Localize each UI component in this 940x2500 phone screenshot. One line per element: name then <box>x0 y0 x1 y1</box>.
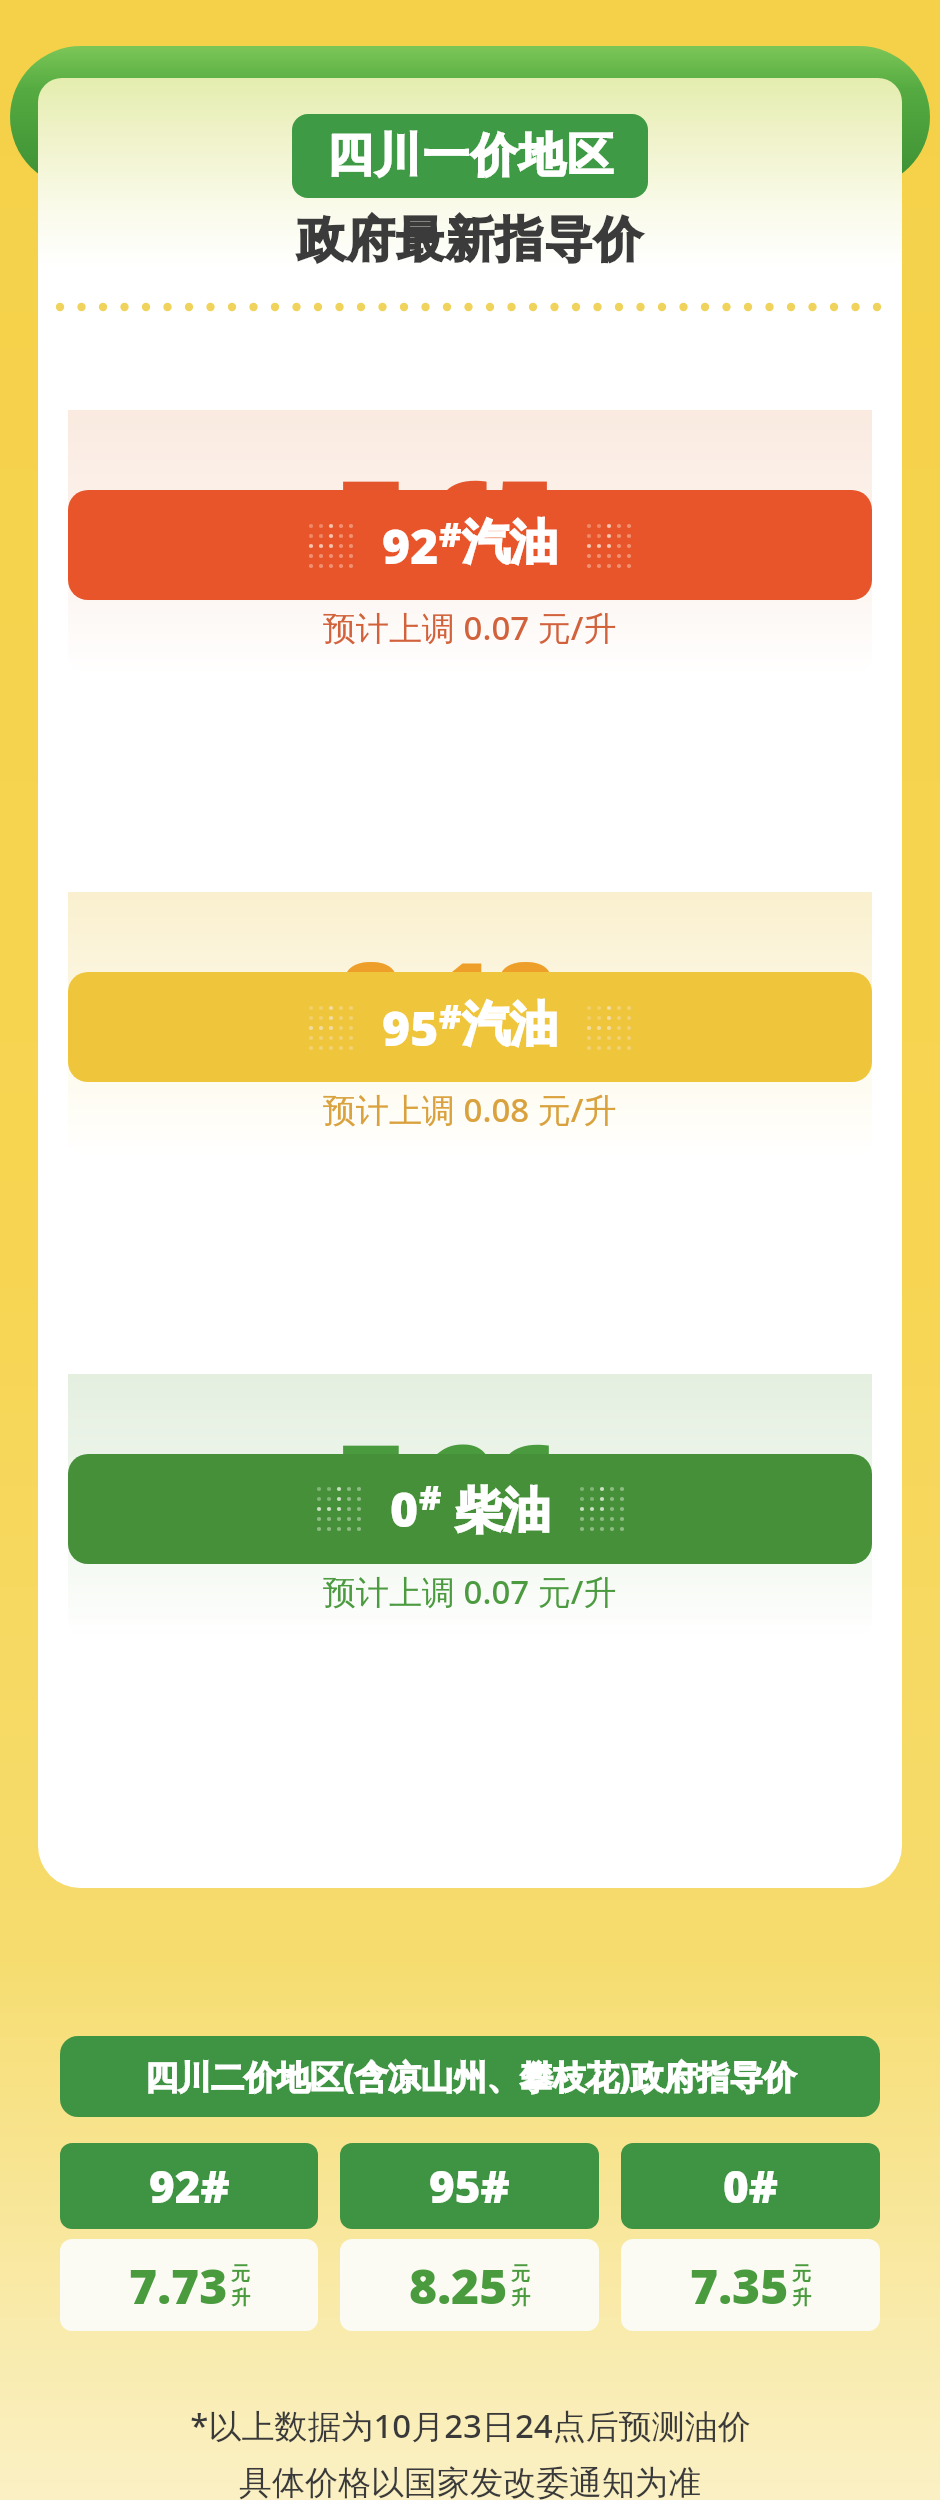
staticText: 四川一价地区 <box>326 127 614 185</box>
staticText: 升 <box>231 2286 250 2310</box>
staticText: 0 <box>390 1476 419 1541</box>
staticText: 7.26 <box>339 1408 557 1555</box>
staticText: 升 <box>511 2286 530 2310</box>
button[interactable]: 8.18 <box>68 838 872 1268</box>
staticText: 8.25 <box>409 2253 508 2318</box>
staticText: 元 <box>511 2262 530 2286</box>
staticText: 四川二价地区(含凉山州、攀枝花)政府指导价 <box>145 2054 796 2099</box>
staticText: 0# <box>723 2156 778 2216</box>
staticText: 元 <box>231 2262 250 2286</box>
staticText: 元 <box>792 2262 811 2286</box>
staticText: 7.35 <box>690 2253 789 2318</box>
staticText: 元/升 <box>563 1490 660 1545</box>
button[interactable]: 四川一价地区 <box>292 114 648 198</box>
staticText: 元/升 <box>563 526 660 581</box>
button[interactable]: 95# <box>340 2143 599 2331</box>
staticText: 汽油 <box>462 513 558 573</box>
button[interactable]: 92# <box>60 2143 318 2331</box>
staticText: 7.65 <box>339 444 557 591</box>
staticText: 预计上调 0.08 元/升 <box>323 1087 617 1132</box>
staticText: 7.73 <box>129 2253 228 2318</box>
staticText: 汽油 <box>462 995 558 1055</box>
staticText: *以上数据为10月23日24点后预测油价 <box>190 2403 751 2448</box>
staticText: 政府最新指导价 <box>297 210 644 270</box>
staticText: 预计上调 0.07 元/升 <box>323 605 617 650</box>
staticText: 95 <box>382 995 439 1060</box>
staticText: # <box>419 1474 442 1520</box>
staticText: 95# <box>429 2156 510 2216</box>
staticText: 92 <box>382 513 439 578</box>
button[interactable]: 7.65 <box>68 356 872 786</box>
staticText: 8.18 <box>339 926 557 1073</box>
staticText: 柴油 <box>442 1476 551 1542</box>
button[interactable]: 四川二价地区(含凉山州、攀枝花)政府指导价 <box>60 2036 880 2117</box>
staticText: 92# <box>149 2156 230 2216</box>
staticText: # <box>439 993 462 1039</box>
staticText: 升 <box>792 2286 811 2310</box>
staticText: 预计上调 0.07 元/升 <box>323 1569 617 1614</box>
button[interactable]: 7.26 <box>68 1320 872 1750</box>
button[interactable]: 0# <box>621 2143 880 2331</box>
staticText: 具体价格以国家发改委通知为准 <box>239 2462 701 2500</box>
staticText: # <box>439 511 462 557</box>
staticText: 元/升 <box>563 1008 660 1063</box>
